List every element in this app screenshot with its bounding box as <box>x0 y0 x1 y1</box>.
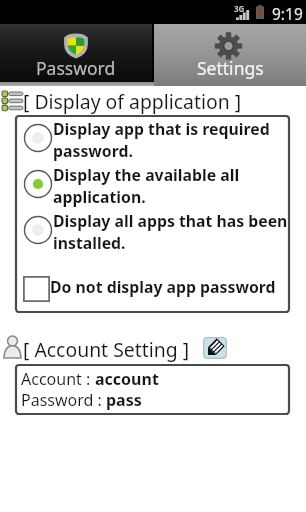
staticText: Password : <box>21 389 106 410</box>
button[interactable]: Edit account <box>203 337 227 359</box>
button[interactable]: Settings <box>154 24 306 86</box>
staticText: installed. <box>53 232 126 254</box>
button[interactable]: Do not display app password <box>15 272 290 305</box>
button[interactable]: Display app that is required <box>15 115 290 161</box>
button[interactable]: Display all apps that has been <box>15 207 290 253</box>
staticText: Do not display app password <box>50 276 276 298</box>
staticText: [ Account Setting ] <box>23 336 190 362</box>
staticText: password. <box>53 140 133 162</box>
staticText: 3G <box>234 3 245 14</box>
staticText: Display all apps that has been <box>53 210 288 232</box>
staticText: Display the available all <box>53 164 240 186</box>
staticText: pass <box>106 389 142 410</box>
staticText: [ Display of application ] <box>23 88 242 114</box>
staticText: Settings <box>197 56 264 80</box>
staticText: Display app that is required <box>53 118 270 140</box>
staticText: Account : <box>21 368 95 389</box>
staticText: account <box>95 368 159 389</box>
button[interactable]: Password <box>0 24 152 82</box>
staticText: 9:19 <box>272 3 303 24</box>
button[interactable]: Display the available all <box>15 161 290 207</box>
staticText: application. <box>53 186 146 208</box>
staticText: Password <box>36 56 116 80</box>
